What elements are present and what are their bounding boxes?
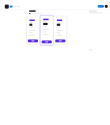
button[interactable]: Home [0,0,110,125]
button[interactable]: Sign up [0,0,110,125]
button[interactable]: Choose plan [0,0,110,125]
button[interactable]: Account [0,0,110,125]
button[interactable]: Choose plan [0,0,110,125]
button[interactable]: List item [0,0,110,125]
button[interactable]: Pricing [0,0,110,125]
button[interactable]: List item [0,0,110,125]
button[interactable]: Products [0,0,110,125]
button[interactable]: List item [0,0,110,125]
button[interactable]: List item [0,0,110,125]
button[interactable]: List item [0,0,110,125]
button[interactable]: List item [0,0,110,125]
button[interactable]: Choose plan [0,0,110,125]
button[interactable]: Solutions [0,0,110,125]
